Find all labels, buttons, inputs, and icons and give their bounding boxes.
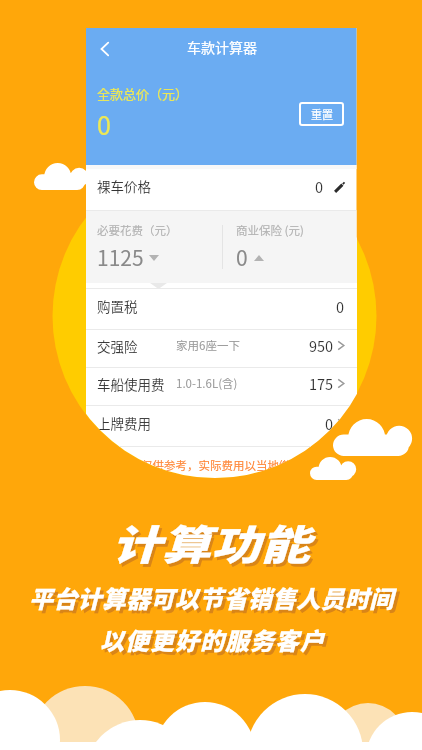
staticText: 车款计算器: [187, 37, 257, 57]
staticText: 0: [325, 413, 334, 434]
staticText: 裸车价格: [97, 176, 151, 196]
staticText: 0: [236, 242, 248, 272]
staticText: 平台计算器可以节省销售人员时间: [29, 580, 394, 615]
staticText: 购置税: [97, 296, 138, 316]
staticText: 计算功能: [112, 512, 310, 571]
staticText: 以上仅供参考，实际费用以当地缴费为准: [118, 457, 325, 474]
staticText: 交强险: [97, 336, 138, 356]
staticText: 平台计算器可以节省销售人员时间: [32, 583, 397, 618]
staticText: 上牌费用: [97, 413, 151, 433]
button[interactable]: 上牌费用: [86, 406, 357, 446]
staticText: 全款总价（元）: [97, 84, 189, 103]
staticText: 0: [315, 176, 324, 197]
button[interactable]: 裸车价格: [86, 165, 357, 211]
staticText: 重置: [311, 106, 333, 122]
button[interactable]: 重置: [299, 102, 344, 126]
button[interactable]: 购置税: [86, 289, 357, 329]
staticText: 计算功能: [114, 515, 313, 574]
staticText: 0: [97, 106, 111, 142]
button[interactable]: 交强险: [86, 330, 357, 367]
staticText: 1125: [97, 242, 144, 272]
staticText: 商业保险 (元): [236, 222, 304, 239]
staticText: 以便更好的服务客户: [103, 625, 328, 660]
button[interactable]: Back: [89, 33, 121, 65]
staticText: 以便更好的服务客户: [100, 622, 325, 657]
staticText: 家用6座一下: [176, 337, 240, 354]
staticText: 950: [309, 335, 334, 356]
button[interactable]: 车船使用费: [86, 368, 357, 405]
staticText: 1.0-1.6L(含): [176, 375, 238, 392]
staticText: 175: [309, 373, 334, 394]
staticText: 0: [336, 296, 345, 317]
staticText: 车船使用费: [97, 374, 165, 394]
staticText: 必要花费（元）: [97, 222, 178, 239]
